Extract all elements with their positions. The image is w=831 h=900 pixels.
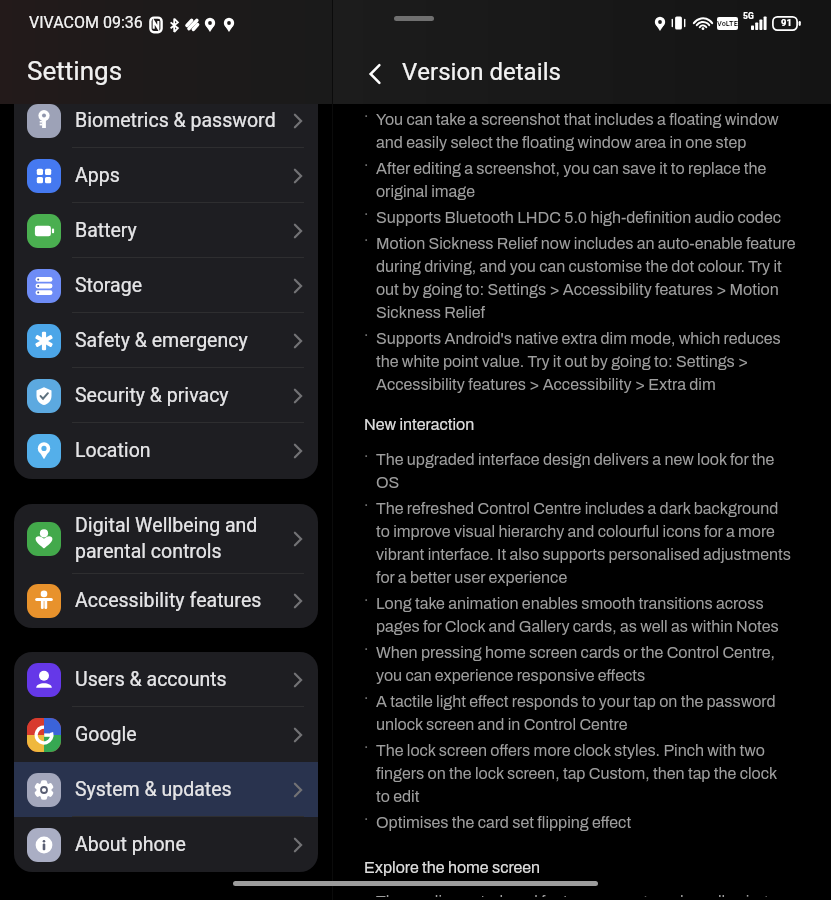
staticText: Settings: [27, 59, 123, 89]
button[interactable]: Security & privacy: [14, 368, 318, 423]
staticText: ·: [364, 106, 369, 129]
staticText: Supports Bluetooth LHDC 5.0 high-definit…: [376, 204, 782, 227]
staticText: Optimises the card set flipping effect: [376, 809, 632, 832]
staticText: Long take animation enables smooth trans…: [376, 590, 779, 636]
staticText: Explore the home screen: [364, 855, 541, 877]
staticText: ·: [364, 155, 369, 178]
staticText: VoLTE: [717, 20, 738, 28]
staticText: ·: [364, 639, 369, 662]
staticText: System & updates: [75, 777, 232, 803]
staticText: The media control card features a progre…: [376, 888, 768, 897]
staticText: Storage: [75, 273, 143, 299]
staticText: After editing a screenshot, you can save…: [376, 155, 767, 201]
staticText: Motion Sickness Relief now includes an a…: [376, 230, 796, 322]
staticText: Apps: [75, 163, 120, 189]
staticText: ·: [364, 737, 369, 760]
staticText: Google: [75, 722, 137, 748]
staticText: Accessibility features: [75, 588, 262, 614]
staticText: Battery: [75, 218, 137, 244]
staticText: ·: [364, 230, 369, 253]
button[interactable]: Back: [358, 57, 392, 91]
button[interactable]: Biometrics & password: [14, 93, 318, 148]
button[interactable]: Battery: [14, 203, 318, 258]
staticText: Biometrics & password: [75, 108, 276, 134]
staticText: A tactile light effect responds to your …: [376, 688, 776, 734]
staticText: You can take a screenshot that includes …: [376, 106, 779, 152]
staticText: ·: [364, 590, 369, 613]
staticText: 5G: [743, 13, 754, 22]
staticText: The upgraded interface design delivers a…: [376, 446, 775, 492]
staticText: Safety & emergency: [75, 328, 248, 354]
staticText: The refreshed Control Centre includes a …: [376, 495, 791, 587]
button[interactable]: Safety & emergency: [14, 313, 318, 368]
staticText: New interaction: [364, 412, 475, 434]
staticText: ·: [364, 809, 369, 832]
button[interactable]: Apps: [14, 148, 318, 203]
button[interactable]: Storage: [14, 258, 318, 313]
button[interactable]: Location: [14, 423, 318, 478]
staticText: About phone: [75, 832, 186, 858]
staticText: ·: [364, 446, 369, 469]
staticText: Security & privacy: [75, 383, 229, 409]
staticText: The lock screen offers more clock styles…: [376, 737, 778, 806]
button[interactable]: System & updates: [14, 762, 318, 817]
button[interactable]: Accessibility features: [14, 574, 318, 628]
staticText: VIVACOM 09:36: [29, 14, 143, 34]
staticText: Users & accounts: [75, 667, 227, 693]
staticText: Digital Wellbeing and parental controls: [75, 513, 258, 565]
button[interactable]: Users & accounts: [14, 652, 318, 707]
staticText: ·: [364, 495, 369, 518]
staticText: Version details: [402, 60, 561, 88]
staticText: Location: [75, 438, 151, 464]
button[interactable]: About phone: [14, 817, 318, 872]
button[interactable]: Google: [14, 707, 318, 762]
staticText: ·: [364, 688, 369, 711]
staticText: 91: [781, 19, 792, 29]
staticText: ·: [364, 204, 369, 227]
staticText: When pressing home screen cards or the C…: [376, 639, 775, 685]
staticText: Supports Android's native extra dim mode…: [376, 325, 781, 394]
button[interactable]: Digital Wellbeing and parental controls: [14, 504, 318, 574]
staticText: ·: [364, 325, 369, 348]
